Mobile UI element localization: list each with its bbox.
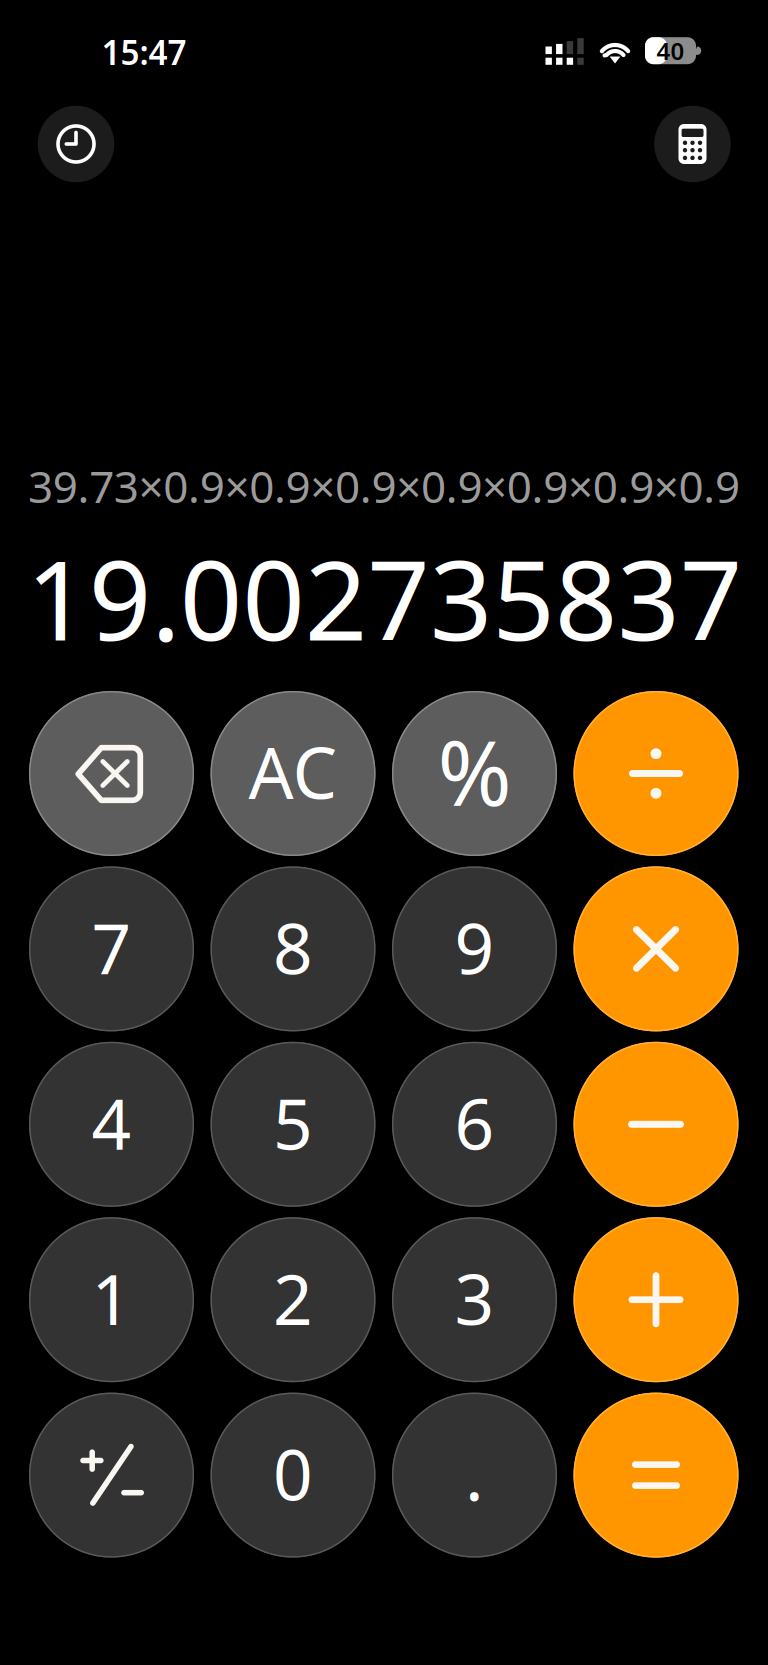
- button[interactable]: Equals: [573, 1393, 738, 1558]
- staticText: %: [437, 712, 511, 830]
- staticText: 5: [273, 1077, 313, 1169]
- button[interactable]: 2: [210, 1217, 375, 1382]
- button[interactable]: 8: [210, 866, 375, 1031]
- button[interactable]: Delete: [29, 691, 194, 856]
- staticText: AC: [248, 725, 337, 818]
- staticText: 0: [273, 1428, 313, 1520]
- staticText: 4: [91, 1077, 131, 1169]
- button[interactable]: Scientific calculator: [654, 106, 731, 182]
- button[interactable]: Subtract: [573, 1042, 738, 1207]
- button[interactable]: Add: [573, 1217, 738, 1382]
- button[interactable]: 6: [392, 1042, 557, 1207]
- staticText: 1: [91, 1252, 131, 1344]
- button[interactable]: 5: [210, 1042, 375, 1207]
- button[interactable]: Divide: [573, 691, 738, 856]
- staticText: 3: [454, 1252, 494, 1344]
- button[interactable]: Multiply: [573, 866, 738, 1031]
- button[interactable]: 9: [392, 866, 557, 1031]
- button[interactable]: Toggle sign: [29, 1393, 194, 1558]
- staticText: 2: [273, 1252, 313, 1344]
- button[interactable]: .: [392, 1393, 557, 1558]
- button[interactable]: %: [392, 691, 557, 856]
- button[interactable]: 1: [29, 1217, 194, 1382]
- button[interactable]: History: [38, 106, 114, 182]
- button[interactable]: 4: [29, 1042, 194, 1207]
- staticText: 40: [656, 35, 684, 67]
- staticText: 7: [91, 901, 131, 993]
- staticText: 15:47: [101, 30, 186, 74]
- button[interactable]: AC: [210, 691, 375, 856]
- button[interactable]: 3: [392, 1217, 557, 1382]
- staticText: 39.73×0.9×0.9×0.9×0.9×0.9×0.9×0.9: [28, 457, 740, 515]
- staticText: 6: [454, 1077, 494, 1169]
- staticText: .: [465, 1428, 484, 1520]
- button[interactable]: 0: [210, 1393, 375, 1558]
- staticText: 19.002735837: [26, 525, 743, 671]
- staticText: 9: [454, 901, 494, 993]
- staticText: 8: [273, 901, 313, 993]
- button[interactable]: 7: [29, 866, 194, 1031]
